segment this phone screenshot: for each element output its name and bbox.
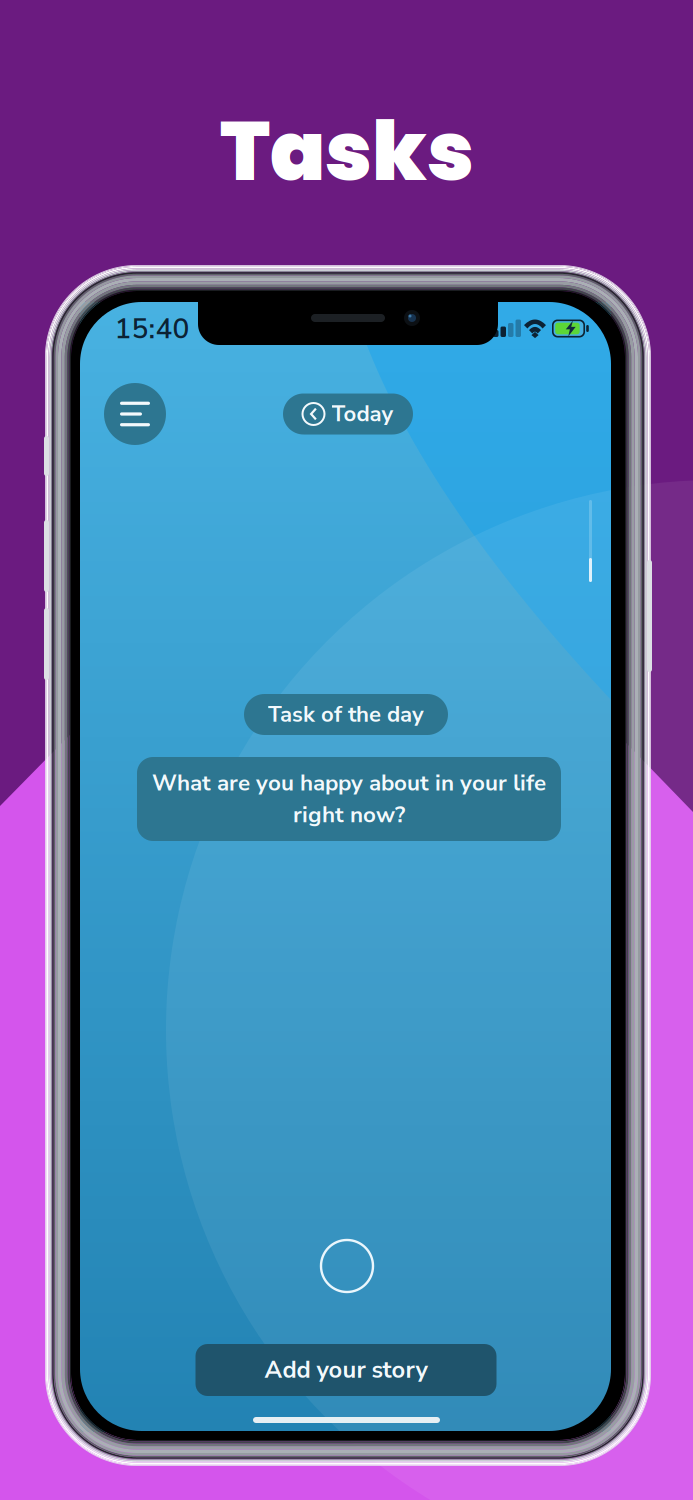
staticText: What are you happy about in your life xyxy=(152,768,546,798)
staticText: right now? xyxy=(293,799,405,830)
staticText: Tasks xyxy=(220,95,474,208)
button[interactable]: Task of the day xyxy=(244,694,448,735)
button[interactable]: Menu xyxy=(104,383,166,445)
staticText: Today xyxy=(331,399,393,429)
button[interactable]: Today xyxy=(283,393,413,434)
staticText: Task of the day xyxy=(268,699,424,730)
button[interactable]: Record xyxy=(321,1240,373,1292)
staticText: Add your story xyxy=(264,1354,427,1386)
button[interactable]: Add your story xyxy=(195,1344,496,1396)
staticText: 15:40 xyxy=(114,310,189,348)
